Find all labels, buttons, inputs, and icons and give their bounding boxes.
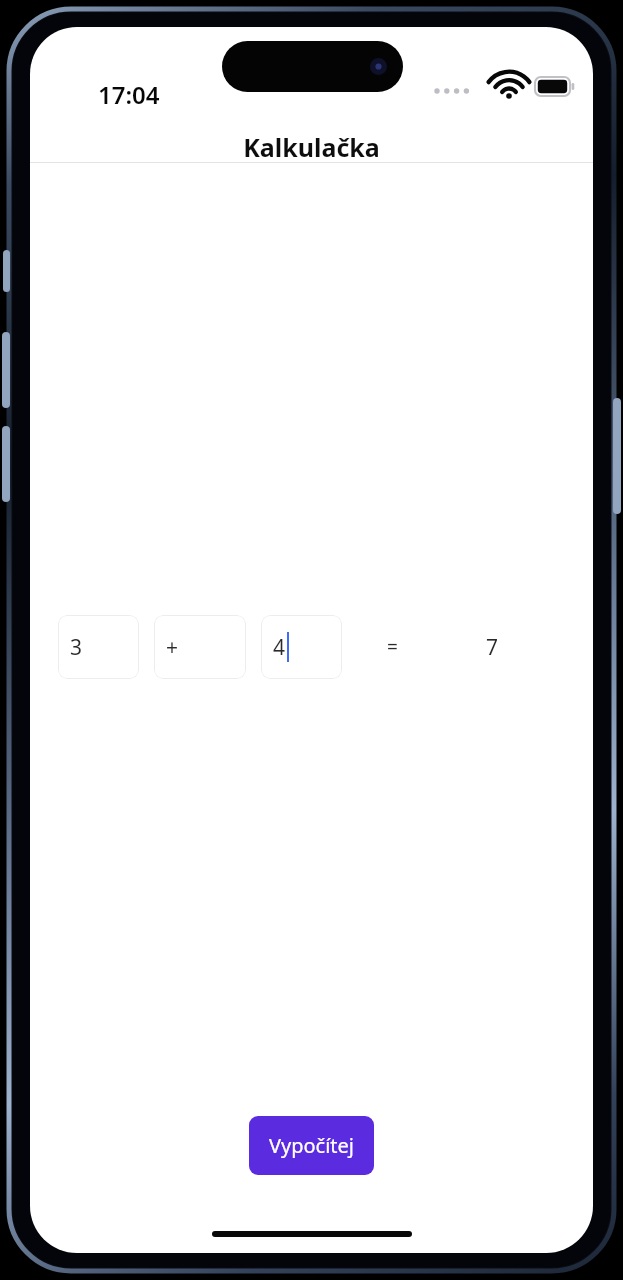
- button[interactable]: 3: [58, 615, 139, 679]
- staticText: =: [387, 634, 398, 660]
- staticText: 17:04: [98, 78, 160, 111]
- staticText: 7: [486, 633, 499, 662]
- button[interactable]: +: [154, 615, 246, 679]
- button[interactable]: 4: [261, 615, 342, 679]
- staticText: Vypočítej: [269, 1132, 355, 1159]
- staticText: +: [166, 633, 179, 662]
- staticText: 4: [273, 633, 286, 662]
- staticText: 3: [70, 633, 83, 662]
- other: Home indicator: [212, 1231, 412, 1237]
- button[interactable]: Vypočítej: [249, 1116, 374, 1175]
- staticText: Kalkulačka: [30, 130, 593, 164]
